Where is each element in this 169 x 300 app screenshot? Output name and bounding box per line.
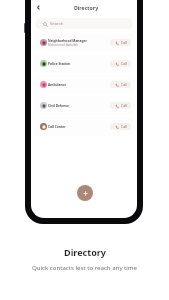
staticText: Ambulance — [48, 83, 67, 87]
button[interactable]: Call — [110, 123, 131, 130]
button[interactable]: Ambulance — [33, 75, 134, 94]
button[interactable]: Call — [110, 81, 131, 88]
staticText: Call — [121, 103, 127, 108]
staticText: Neighborhood Manager — [48, 39, 87, 43]
staticText: Call Center — [48, 125, 66, 129]
button[interactable]: Back — [34, 3, 43, 12]
staticText: Police Station — [48, 62, 71, 66]
button[interactable]: Civil Defense — [33, 96, 134, 115]
button[interactable]: Neighborhood Manager — [33, 33, 134, 52]
button[interactable]: Call — [110, 102, 131, 109]
staticText: Mohammed Abdullah — [48, 43, 78, 47]
staticText: Call — [121, 124, 127, 129]
button[interactable]: Police Station — [33, 54, 134, 73]
staticText: Quick contacts lest to reach any time — [32, 263, 137, 271]
staticText: Civil Defense — [48, 104, 69, 108]
staticText: Call — [121, 61, 127, 66]
button[interactable]: Call Center — [33, 117, 134, 136]
button[interactable]: Search — [35, 18, 133, 29]
staticText: Directory — [64, 246, 106, 258]
button[interactable]: Call — [110, 60, 131, 67]
staticText: Search — [50, 21, 64, 27]
staticText: Call — [121, 40, 127, 45]
button[interactable]: Add contact — [77, 185, 93, 201]
staticText: Directory — [74, 4, 99, 11]
staticText: Call — [121, 82, 127, 87]
button[interactable]: Call — [110, 39, 131, 46]
